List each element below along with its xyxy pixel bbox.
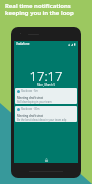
staticText: Slackcow · 30m xyxy=(21,107,40,111)
button[interactable]: Slackcow · 30m xyxy=(15,106,77,122)
staticText: Slackcow · 5m xyxy=(21,89,38,93)
staticText: 17:17 xyxy=(14,67,78,85)
staticText: Meeting draft strat xyxy=(17,96,43,100)
staticText: Be the best ideas ideas in your team adp xyxy=(17,118,67,122)
other: Locked xyxy=(45,158,48,162)
button[interactable]: Slackcow · 5m xyxy=(15,88,77,104)
staticText: Meeting draft strat xyxy=(17,114,43,118)
staticText: Still developing in your team xyxy=(17,100,52,104)
staticText: Mon, March 5 xyxy=(14,83,78,87)
staticText: Real time notifications keeping you in t… xyxy=(5,2,74,16)
staticText: Vodafone xyxy=(16,42,30,46)
